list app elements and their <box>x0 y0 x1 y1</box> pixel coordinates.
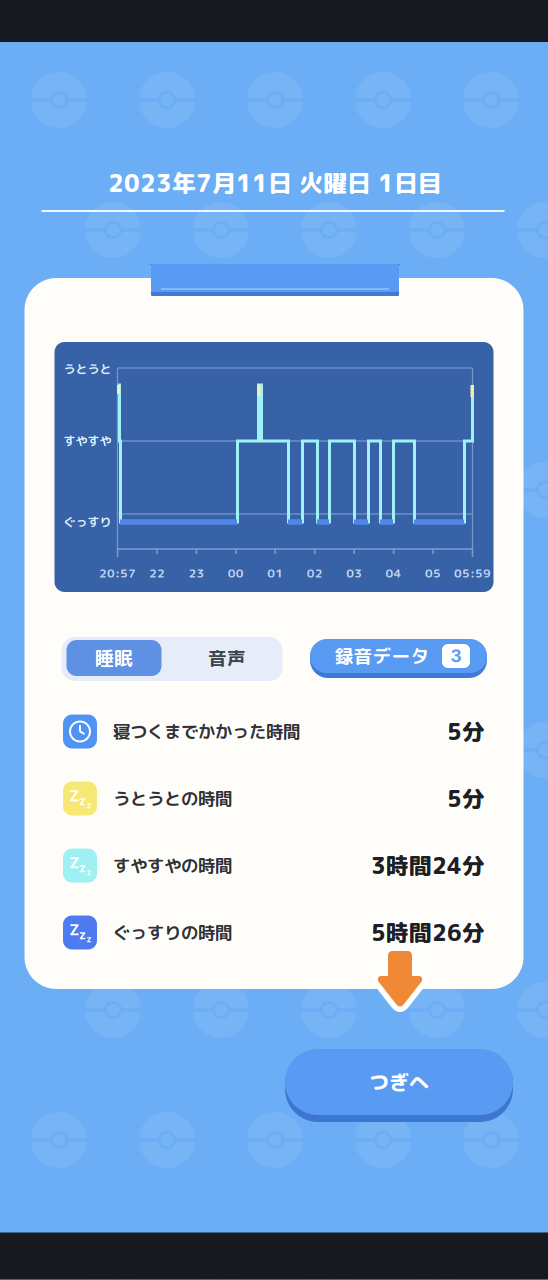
staticText: Z <box>69 854 79 872</box>
staticText: z <box>79 928 86 942</box>
staticText: 22 <box>149 565 165 581</box>
staticText: ぐっすり <box>63 514 111 530</box>
button[interactable]: つぎへ <box>285 1047 513 1123</box>
staticText: 00 <box>228 565 244 581</box>
staticText: 02 <box>307 565 323 581</box>
staticText: 寝つくまでかかった時間 <box>113 719 300 744</box>
staticText: 03 <box>346 565 362 581</box>
staticText: 01 <box>267 565 283 581</box>
staticText: Z <box>69 921 79 939</box>
staticText: 5分 <box>447 783 485 814</box>
staticText: つぎへ <box>369 1068 429 1096</box>
button[interactable]: 音声 <box>179 640 274 676</box>
staticText: 音声 <box>208 645 246 671</box>
staticText: z <box>79 861 86 875</box>
staticText: 録音データ <box>334 643 429 669</box>
staticText: 23 <box>188 565 204 581</box>
staticText: 05:59 <box>454 565 491 581</box>
staticText: 04 <box>386 565 402 581</box>
staticText: 05 <box>425 565 441 581</box>
staticText: z <box>79 794 86 808</box>
staticText: すやすやの時間 <box>113 853 232 878</box>
staticText: すやすや <box>63 433 111 449</box>
staticText: z <box>86 800 91 810</box>
staticText: 5時間26分 <box>371 917 485 948</box>
staticText: 睡眠 <box>95 645 133 671</box>
staticText: うとうと <box>63 361 111 377</box>
button[interactable]: 録音データ <box>310 638 487 680</box>
staticText: z <box>86 867 91 877</box>
button[interactable]: 睡眠 <box>66 640 161 676</box>
staticText: 5分 <box>447 716 485 747</box>
staticText: 3時間24分 <box>371 850 485 881</box>
staticText: 3 <box>450 645 461 666</box>
staticText: z <box>86 934 91 944</box>
staticText: ぐっすりの時間 <box>113 920 232 945</box>
staticText: うとうとの時間 <box>113 786 232 811</box>
staticText: 20:57 <box>99 565 136 581</box>
staticText: 2023年7月11日 火曜日 1日目 <box>108 166 442 200</box>
staticText: Z <box>69 787 79 805</box>
